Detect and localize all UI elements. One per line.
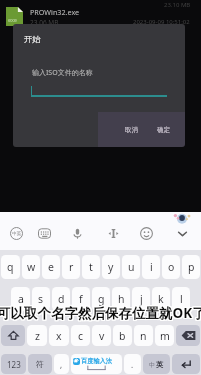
staticText: 可以取个名字然后保存位置就OK了 (0, 303, 198, 321)
staticText: y (108, 260, 114, 274)
staticText: 符 (36, 359, 44, 369)
staticText: d (58, 292, 65, 306)
button[interactable]: 确定 (149, 121, 179, 139)
staticText: l (180, 292, 183, 306)
staticText: a (18, 292, 24, 306)
staticText: x (56, 329, 62, 343)
staticText: n (140, 329, 147, 343)
button[interactable]: Shift (1, 325, 25, 346)
button[interactable]: Numbers (1, 354, 26, 374)
button[interactable]: Comma (54, 354, 69, 374)
staticText: j (140, 292, 143, 306)
button[interactable]: m (155, 325, 174, 346)
staticText: 中 (149, 361, 156, 369)
staticText: 中英 (12, 231, 21, 237)
staticText: 输入ISO文件的名称 (32, 68, 93, 78)
button[interactable]: f (72, 287, 90, 311)
button[interactable]: c (71, 325, 90, 346)
staticText: g (98, 292, 105, 306)
staticText: u (128, 260, 135, 274)
button[interactable]: e (42, 255, 60, 279)
staticText: . (131, 359, 134, 370)
staticText: w (27, 260, 36, 274)
staticText: 百度输入法 (81, 357, 112, 365)
staticText: 可以取个名字然后保存位置就OK了 (0, 304, 199, 322)
staticText: o (168, 260, 175, 274)
button[interactable]: Enter (172, 354, 200, 374)
staticText: t (89, 260, 93, 274)
button[interactable]: Emoji (130, 216, 163, 250)
button[interactable]: i (142, 255, 160, 279)
staticText: 23.06 MB (30, 18, 59, 27)
staticText: z (35, 329, 40, 343)
button[interactable]: t (82, 255, 100, 279)
staticText: 确定 (157, 126, 171, 134)
button[interactable]: Voice input (61, 216, 94, 250)
staticText: , (60, 359, 63, 370)
button[interactable]: h (112, 287, 130, 311)
staticText: 可以取个名字然后保存位置就OK了 (0, 303, 199, 321)
staticText: 可以取个名字然后保存位置就OK了 (0, 305, 197, 323)
button[interactable]: Period (124, 354, 141, 374)
button[interactable]: w (22, 255, 40, 279)
staticText: c (78, 329, 84, 343)
staticText: 可以取个名字然后保存位置就OK了 (0, 305, 198, 323)
button[interactable]: z (27, 325, 47, 346)
button[interactable]: Hide keyboard (166, 216, 199, 250)
staticText: h (118, 292, 125, 306)
button[interactable]: l (172, 287, 190, 311)
button[interactable]: u (122, 255, 140, 279)
staticText: q (7, 260, 14, 274)
button[interactable]: Space (71, 354, 122, 374)
button[interactable]: y (102, 255, 120, 279)
staticText: s (38, 292, 44, 306)
staticText: r (69, 260, 74, 274)
button[interactable]: s (32, 287, 50, 311)
button[interactable]: n (134, 325, 153, 346)
button[interactable]: x (49, 325, 69, 346)
button[interactable]: d (52, 287, 70, 311)
staticText: v (99, 329, 105, 343)
staticText: PROWin32.exe (30, 7, 80, 17)
staticText: k (158, 292, 164, 306)
staticText: 英 (156, 360, 164, 369)
button[interactable]: Backspace (176, 325, 200, 346)
button[interactable]: Keyboard layout (28, 216, 61, 250)
button[interactable]: Symbols (28, 354, 52, 374)
button[interactable]: g (92, 287, 110, 311)
staticText: 2023-09-09 10:51:02 (133, 18, 190, 26)
button[interactable]: p (182, 255, 200, 279)
staticText: exe (8, 16, 17, 23)
staticText: 123 (7, 359, 21, 370)
staticText: p (188, 260, 195, 274)
button[interactable]: r (62, 255, 80, 279)
staticText: m (160, 329, 170, 343)
staticText: 取消 (125, 126, 139, 134)
button[interactable]: 取消 (117, 121, 147, 139)
button[interactable]: j (132, 287, 150, 311)
staticText: 开始 (24, 34, 41, 44)
button[interactable]: v (92, 325, 111, 346)
staticText: e (48, 260, 54, 274)
staticText: i (150, 260, 153, 274)
staticText: 可以取个名字然后保存位置就OK了 (0, 305, 199, 323)
button[interactable]: o (162, 255, 180, 279)
button[interactable]: b (113, 325, 132, 346)
staticText: f (79, 292, 83, 306)
staticText: 可以取个名字然后保存位置就OK了 (0, 304, 198, 322)
button[interactable]: Switch language (0, 216, 33, 250)
staticText: 可以取个名字然后保存位置就OK了 (0, 304, 197, 322)
button[interactable]: q (1, 255, 20, 279)
staticText: 23.10 MB (164, 1, 191, 9)
button[interactable]: Move cursor (97, 216, 130, 250)
staticText: b (119, 329, 126, 343)
button[interactable]: Chinese English toggle (143, 354, 170, 374)
button[interactable]: k (152, 287, 170, 311)
staticText: 可以取个名字然后保存位置就OK了 (0, 303, 197, 321)
button[interactable]: a (11, 287, 30, 311)
